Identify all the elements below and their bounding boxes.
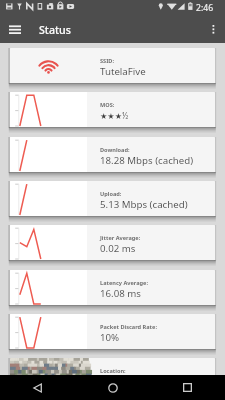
staticText: Download: (100, 146, 130, 154)
button[interactable]: MOS: (10, 92, 215, 127)
staticText: 2:46 (196, 2, 214, 14)
staticText: Upload: (100, 190, 122, 198)
button[interactable]: Location: (10, 358, 215, 393)
staticText: SSID: (100, 57, 115, 65)
staticText: TutelaFive (100, 65, 146, 78)
button[interactable]: Menu (0, 16, 30, 43)
staticText: 5.13 Mbps (cached) (100, 198, 188, 211)
button[interactable]: Packet Discard Rate: (10, 314, 215, 349)
button[interactable]: SSID: (10, 48, 215, 83)
staticText: 10% (100, 331, 120, 344)
button[interactable]: More options (201, 16, 225, 43)
staticText: 18.28 Mbps (cached) (100, 154, 194, 167)
staticText: Packet Discard Rate: (100, 323, 157, 331)
button[interactable]: Jitter Average: (10, 225, 215, 260)
staticText: 16.08 ms (100, 287, 141, 300)
staticText: Status (39, 23, 71, 37)
button[interactable]: Latency Average: (10, 270, 215, 305)
staticText: Location: (100, 367, 126, 375)
button[interactable]: Recents (150, 375, 225, 400)
button[interactable]: Home (75, 375, 150, 400)
staticText: Jitter Average: (100, 234, 141, 242)
staticText: Latency Average: (100, 279, 149, 287)
staticText: ★★★½ (100, 110, 129, 121)
staticText: 0.02 ms (100, 242, 136, 255)
button[interactable]: Upload: (10, 181, 215, 216)
button[interactable]: Download: (10, 137, 215, 172)
button[interactable]: Back (0, 375, 75, 400)
staticText: MOS: (100, 101, 115, 109)
